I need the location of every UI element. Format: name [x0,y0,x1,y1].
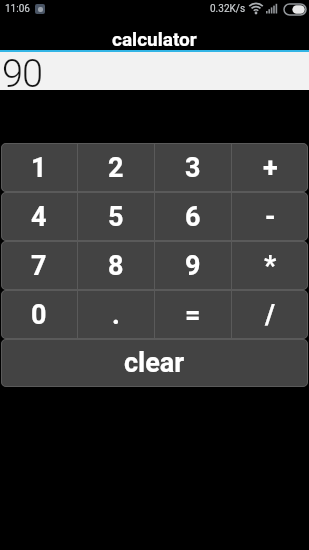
staticText: * [264,250,277,282]
staticText: 11:06 [5,3,30,15]
button[interactable]: 3 [155,143,231,192]
staticText: 3 [185,152,201,184]
staticText: 8 [108,250,124,282]
button[interactable]: = [155,290,231,339]
staticText: / [265,299,276,331]
staticText: 1 [31,152,47,184]
staticText: 0 [31,299,47,331]
button[interactable]: / [232,290,308,339]
staticText: calculator [112,28,197,50]
button[interactable]: 4 [1,192,77,241]
staticText: . [112,299,120,331]
staticText: 5 [108,201,124,233]
staticText: 0.32K/s [210,3,246,15]
button[interactable]: . [78,290,154,339]
staticText: 90 [2,52,43,90]
staticText: + [263,152,278,184]
button[interactable]: 2 [78,143,154,192]
button[interactable]: - [232,192,308,241]
button[interactable]: 7 [1,241,77,290]
button[interactable]: * [232,241,308,290]
staticText: 2 [108,152,124,184]
button[interactable]: 8 [78,241,154,290]
button[interactable]: 6 [155,192,231,241]
staticText: 9 [185,250,201,282]
staticText: = [185,299,201,331]
button[interactable]: 5 [78,192,154,241]
staticText: clear [124,347,185,379]
staticText: 4 [31,201,47,233]
button[interactable]: clear [1,339,308,387]
button[interactable]: + [232,143,308,192]
staticText: - [265,201,276,233]
button[interactable]: 0 [1,290,77,339]
staticText: 7 [31,250,47,282]
button[interactable]: 1 [1,143,77,192]
staticText: 6 [185,201,201,233]
button[interactable]: 9 [155,241,231,290]
